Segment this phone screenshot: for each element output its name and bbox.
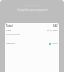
- button[interactable]: Total: [6, 24, 58, 28]
- staticText: Complete your payment: [17, 8, 48, 12]
- staticText: Active: [52, 42, 58, 45]
- staticText: Total: [6, 24, 13, 28]
- button[interactable]: Delivery: [6, 42, 58, 45]
- staticText: $42: [53, 24, 58, 28]
- button[interactable]: Card: [6, 29, 58, 32]
- staticText: Card: [6, 29, 11, 32]
- staticText: Delivery: [6, 42, 15, 45]
- staticText: **** 1234: [47, 29, 58, 32]
- staticText: Expires 08/26: [6, 33, 20, 36]
- button[interactable]: Expires 08/26: [6, 33, 58, 36]
